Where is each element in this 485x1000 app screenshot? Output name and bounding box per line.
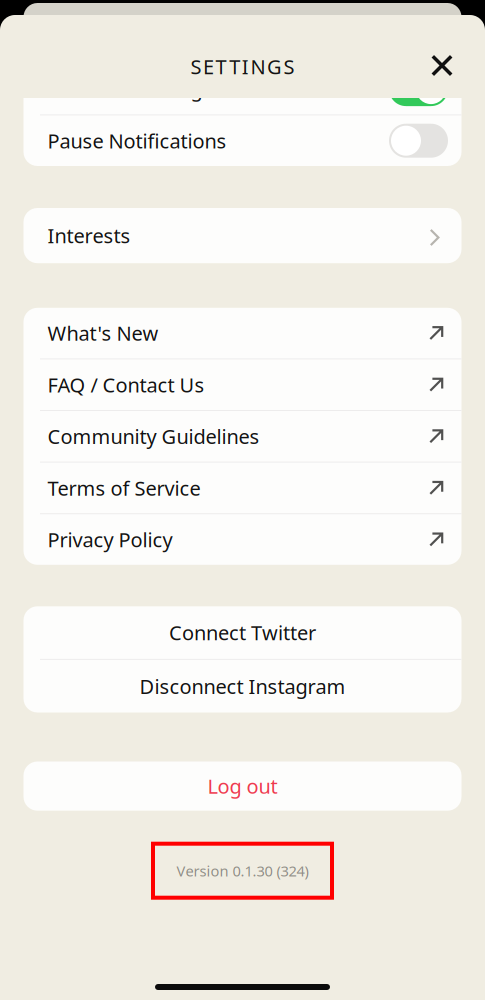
- button[interactable]: Disconnect Instagram: [23, 660, 461, 712]
- staticText: Privacy Policy: [47, 526, 172, 553]
- staticText: Connect Twitter: [169, 619, 316, 646]
- staticText: SETTINGS: [190, 53, 295, 80]
- button[interactable]: Close: [424, 47, 460, 85]
- button[interactable]: Community Guidelines: [23, 411, 461, 462]
- button[interactable]: Interests: [23, 208, 461, 263]
- button[interactable]: FAQ / Contact Us: [23, 359, 461, 410]
- staticText: Location Sharing: [47, 75, 202, 103]
- staticText: What's New: [47, 319, 158, 347]
- button[interactable]: Connect Twitter: [23, 606, 461, 659]
- staticText: Disconnect Instagram: [139, 673, 345, 700]
- staticText: Log out: [207, 772, 277, 800]
- staticText: Interests: [47, 222, 130, 249]
- staticText: Pause Notifications: [47, 127, 226, 154]
- staticText: FAQ / Contact Us: [47, 371, 204, 398]
- staticText: Version 0.1.30 (324): [176, 861, 308, 881]
- staticText: Community Guidelines: [47, 423, 259, 450]
- staticText: Terms of Service: [47, 474, 200, 501]
- button[interactable]: Terms of Service: [23, 463, 461, 513]
- button[interactable]: Privacy Policy: [23, 514, 461, 565]
- button[interactable]: Log out: [23, 761, 461, 811]
- button[interactable]: What's New: [23, 308, 461, 358]
